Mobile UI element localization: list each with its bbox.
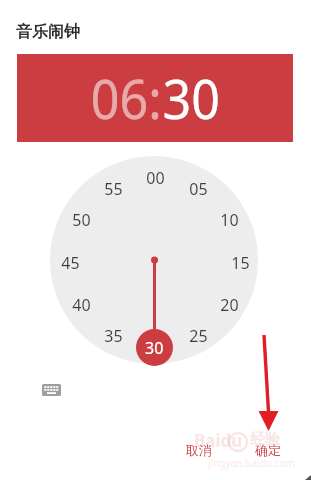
staticText: 经验 [250, 430, 280, 449]
staticText: 25 [189, 325, 208, 345]
staticText: 00 [146, 167, 165, 187]
button[interactable]: 15 [225, 252, 255, 272]
button[interactable]: 55 [98, 178, 128, 198]
button[interactable]: 40 [66, 294, 96, 314]
button[interactable]: 00 [140, 167, 170, 187]
button[interactable]: 20 [214, 294, 244, 314]
staticText: 55 [104, 178, 123, 198]
staticText: 10 [220, 209, 239, 229]
staticText: jingyan.baidu.com [208, 456, 295, 470]
staticText: 50 [72, 209, 91, 229]
staticText: 取消 [186, 442, 212, 458]
staticText: 音乐闹钟 [16, 22, 80, 42]
button[interactable]: 确定 [246, 437, 290, 463]
button[interactable] [42, 384, 61, 396]
staticText: 20 [220, 294, 239, 314]
staticText: 45 [61, 252, 80, 272]
staticText: 35 [104, 325, 123, 345]
button[interactable]: 50 [66, 209, 96, 229]
button[interactable]: 30 [136, 329, 173, 366]
staticText: 40 [72, 294, 91, 314]
button[interactable]: 10 [214, 209, 244, 229]
button[interactable]: 06: [91, 61, 162, 135]
button[interactable]: 35 [98, 325, 128, 345]
staticText: 确定 [255, 442, 281, 458]
staticText: 15 [231, 252, 250, 272]
button[interactable]: 30 [162, 61, 220, 135]
button[interactable]: 取消 [177, 437, 221, 463]
staticText: Baidu [194, 429, 243, 452]
staticText: 05 [189, 178, 208, 198]
staticText: 30 [145, 337, 164, 359]
button[interactable]: 45 [55, 252, 85, 272]
button[interactable]: 25 [183, 325, 213, 345]
button[interactable]: 05 [183, 178, 213, 198]
